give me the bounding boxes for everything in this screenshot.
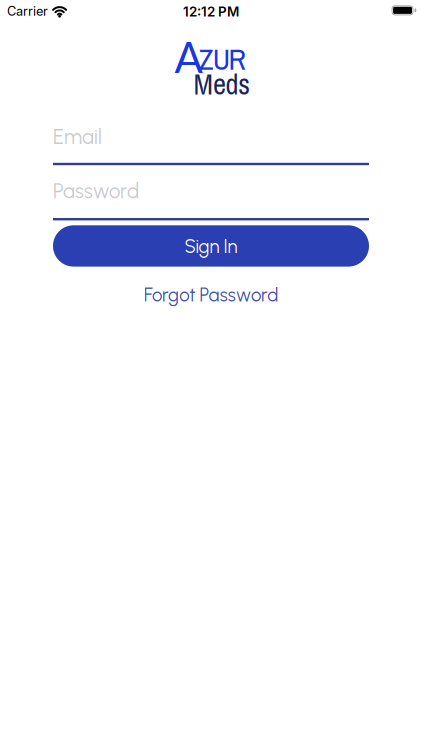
staticText: Sign In [184, 235, 237, 258]
staticText: Email [53, 125, 102, 149]
staticText: A [174, 31, 202, 82]
button[interactable]: Forgot Password [144, 284, 278, 306]
staticText: 12:12 PM [183, 4, 239, 20]
button[interactable]: Password [53, 179, 369, 220]
staticText: Carrier [7, 3, 48, 19]
button[interactable]: Sign In [53, 225, 369, 267]
button[interactable]: Email [53, 125, 369, 165]
staticText: Password [53, 179, 139, 203]
staticText: Forgot Password [144, 284, 278, 306]
staticText: ZUR [199, 39, 246, 79]
staticText: Meds [193, 65, 250, 103]
